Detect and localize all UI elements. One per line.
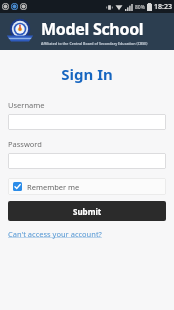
button[interactable]: Can't access your account?	[8, 229, 102, 239]
button[interactable]: Password input	[8, 153, 166, 169]
staticText: Can't access your account?	[8, 229, 102, 239]
button[interactable]: Username input	[8, 114, 166, 130]
staticText: 80%	[135, 4, 145, 11]
staticText: Model School	[41, 18, 144, 40]
button[interactable]: Submit	[8, 201, 166, 221]
staticText: Password	[8, 139, 42, 149]
staticText: Submit	[73, 206, 102, 217]
staticText: Remember me	[27, 182, 80, 192]
staticText: Sign In	[8, 64, 166, 84]
staticText: Username	[8, 100, 45, 110]
staticText: Affiliated to the Central Board of Secon…	[41, 41, 148, 46]
staticText: 18:23	[154, 2, 172, 12]
button[interactable]: Remember me	[8, 178, 166, 195]
